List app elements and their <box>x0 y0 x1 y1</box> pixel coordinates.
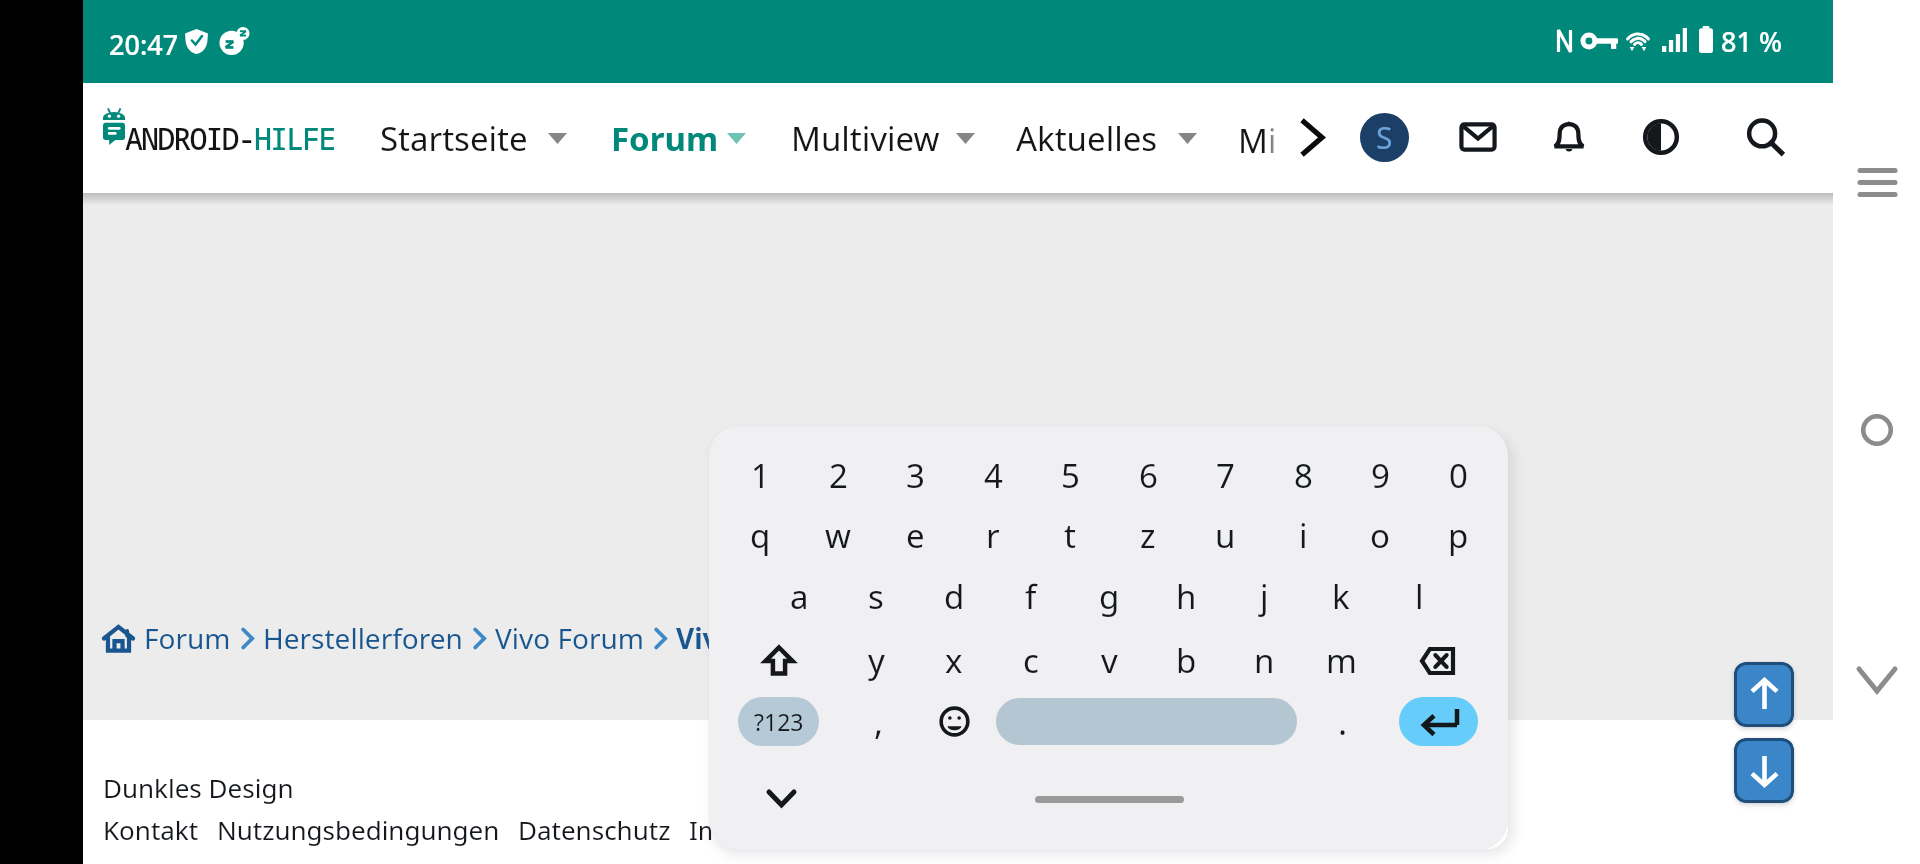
button[interactable]: Aktuelles <box>1016 83 1158 193</box>
button[interactable]: 1 <box>726 449 794 501</box>
button[interactable]: Datenschutz <box>518 812 671 847</box>
button[interactable]: c <box>997 634 1065 686</box>
button[interactable]: Löschen <box>1403 634 1471 688</box>
button[interactable]: Startbildschirm <box>1845 398 1909 462</box>
button[interactable]: 5 <box>1036 449 1104 501</box>
staticText: . <box>1338 699 1348 745</box>
button[interactable]: Forum <box>144 619 231 657</box>
staticText: b <box>1176 638 1197 683</box>
staticText: Impressum <box>689 812 829 847</box>
button[interactable]: Vivo Forum <box>495 619 644 657</box>
button[interactable]: Dunkles Design <box>103 770 294 805</box>
button[interactable]: Zurück <box>1845 648 1909 712</box>
button[interactable]: g <box>1075 570 1143 622</box>
button[interactable]: d <box>920 570 988 622</box>
button[interactable]: v <box>1075 634 1143 686</box>
staticText: s <box>868 574 884 619</box>
button[interactable]: Startseite <box>380 83 528 193</box>
button[interactable]: x <box>920 634 988 686</box>
staticText: Forum <box>144 619 231 657</box>
staticText: j <box>1260 574 1269 619</box>
button[interactable]: Tastatur schließen <box>753 776 809 821</box>
button[interactable]: l <box>1385 570 1453 622</box>
button[interactable]: r <box>959 509 1027 561</box>
button[interactable]: m <box>1307 634 1375 686</box>
button[interactable]: Umschalt <box>745 633 813 687</box>
staticText: Nutzungsbedingungen <box>217 812 500 847</box>
button[interactable]: Multiview <box>791 83 940 193</box>
button[interactable]: u <box>1191 509 1259 561</box>
button[interactable]: Mehr <box>1283 107 1343 167</box>
button[interactable]: f <box>997 570 1065 622</box>
staticText: z <box>1140 513 1156 558</box>
button[interactable]: b <box>1152 634 1220 686</box>
button[interactable]: 6 <box>1114 449 1182 501</box>
staticText: 5 <box>1061 453 1080 498</box>
button[interactable]: Herstellerforen <box>263 619 463 657</box>
button[interactable]: t <box>1036 509 1104 561</box>
button[interactable]: n <box>1230 634 1298 686</box>
button[interactable]: Nutzungsbedingungen <box>217 812 500 847</box>
staticText: d <box>944 574 965 619</box>
button[interactable]: Profil <box>1360 113 1409 162</box>
button[interactable]: 7 <box>1191 449 1259 501</box>
button[interactable]: 3 <box>881 449 949 501</box>
staticText: 9 <box>1371 453 1390 498</box>
button[interactable]: z <box>1114 509 1182 561</box>
button[interactable]: a <box>765 570 833 622</box>
button[interactable]: . <box>1317 697 1369 746</box>
button[interactable]: q <box>726 509 794 561</box>
staticText: k <box>1332 574 1350 619</box>
button[interactable]: Menü <box>1845 150 1909 214</box>
staticText: Herstellerforen <box>263 619 463 657</box>
staticText: v <box>1101 638 1118 683</box>
staticText: Vivo Forum <box>495 619 644 657</box>
button[interactable]: i <box>1269 509 1337 561</box>
button[interactable]: Startseite <box>103 625 134 652</box>
button[interactable]: Eingabe <box>1399 697 1478 746</box>
staticText: ?123 <box>754 706 804 737</box>
button[interactable]: Emoji <box>926 697 982 746</box>
button[interactable]: 8 <box>1269 449 1337 501</box>
button[interactable]: o <box>1346 509 1414 561</box>
staticText: 20:47 <box>109 26 179 63</box>
button[interactable]: 9 <box>1346 449 1414 501</box>
button[interactable]: Nach oben <box>1734 662 1794 727</box>
button[interactable]: Nach unten <box>1734 738 1794 803</box>
button[interactable]: 2 <box>804 449 872 501</box>
staticText: 8 <box>1294 453 1313 498</box>
button[interactable]: , <box>849 697 909 746</box>
button[interactable]: w <box>804 509 872 561</box>
button[interactable]: h <box>1152 570 1220 622</box>
button[interactable]: Impressum <box>689 812 829 847</box>
button[interactable]: p <box>1424 509 1492 561</box>
button[interactable]: Dunkles Design <box>1630 106 1692 168</box>
button[interactable]: ?123 <box>738 697 819 746</box>
staticText: Startseite <box>380 116 528 161</box>
button[interactable]: Kontakt <box>103 812 199 847</box>
staticText: w <box>825 513 851 558</box>
button[interactable]: Forum <box>611 83 719 193</box>
button[interactable]: s <box>842 570 910 622</box>
button[interactable]: 0 <box>1424 449 1492 501</box>
button[interactable]: Benachrichtigungen <box>1538 106 1600 168</box>
staticText: n <box>1254 638 1275 683</box>
button[interactable]: k <box>1307 570 1375 622</box>
button[interactable]: Mitg <box>1238 83 1281 193</box>
button[interactable]: j <box>1230 570 1298 622</box>
staticText: ANDROID- <box>125 118 254 159</box>
button[interactable]: ANDROID- <box>125 83 335 193</box>
button[interactable]: Suche <box>1734 106 1796 168</box>
staticText: y <box>868 638 885 683</box>
button[interactable]: Leertaste <box>996 698 1297 745</box>
button[interactable]: y <box>842 634 910 686</box>
staticText: 6 <box>1139 453 1158 498</box>
button[interactable]: e <box>881 509 949 561</box>
staticText: Mitg <box>1238 118 1281 163</box>
staticText: 4 <box>984 453 1003 498</box>
staticText: Kontakt <box>103 812 199 847</box>
button[interactable]: 4 <box>959 449 1027 501</box>
button[interactable]: Nachrichten <box>1447 106 1509 168</box>
staticText: t <box>1064 513 1076 558</box>
staticText: o <box>1370 513 1390 558</box>
